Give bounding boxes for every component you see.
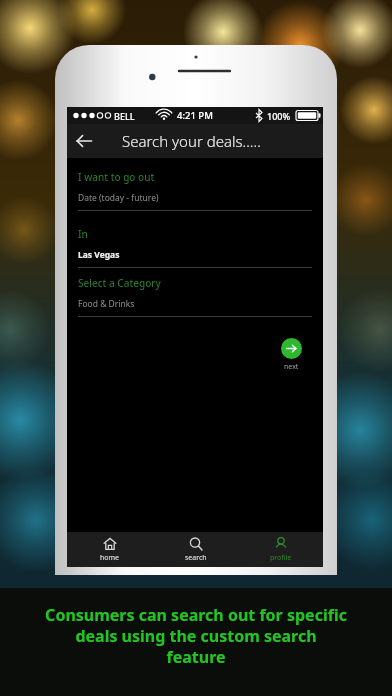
button[interactable]: profile (238, 532, 323, 567)
staticText: In (78, 227, 88, 241)
staticText: 4:21 PM (177, 109, 213, 122)
staticText: 100% (267, 110, 291, 122)
staticText: next (284, 362, 299, 372)
staticText: Consumers can search out for specific de… (45, 604, 347, 668)
button[interactable]: I want to go out (67, 170, 323, 211)
staticText: home (100, 553, 120, 563)
staticText: Search your deals..... (122, 131, 261, 151)
button[interactable]: search (153, 532, 238, 567)
staticText: search (185, 553, 207, 563)
staticText: Food & Drinks (78, 298, 135, 310)
staticText: Las Vegas (78, 249, 120, 261)
staticText: profile (270, 553, 292, 563)
button[interactable]: In (67, 227, 323, 268)
staticText: Select a Category (78, 276, 161, 290)
button[interactable]: Back (67, 124, 101, 158)
button[interactable]: home (67, 532, 153, 567)
staticText: I want to go out (78, 170, 155, 184)
staticText: Date (today - future) (78, 192, 159, 204)
button[interactable]: Select a Category (67, 276, 323, 317)
button[interactable]: Next (277, 334, 306, 376)
staticText: BELL (114, 110, 135, 122)
